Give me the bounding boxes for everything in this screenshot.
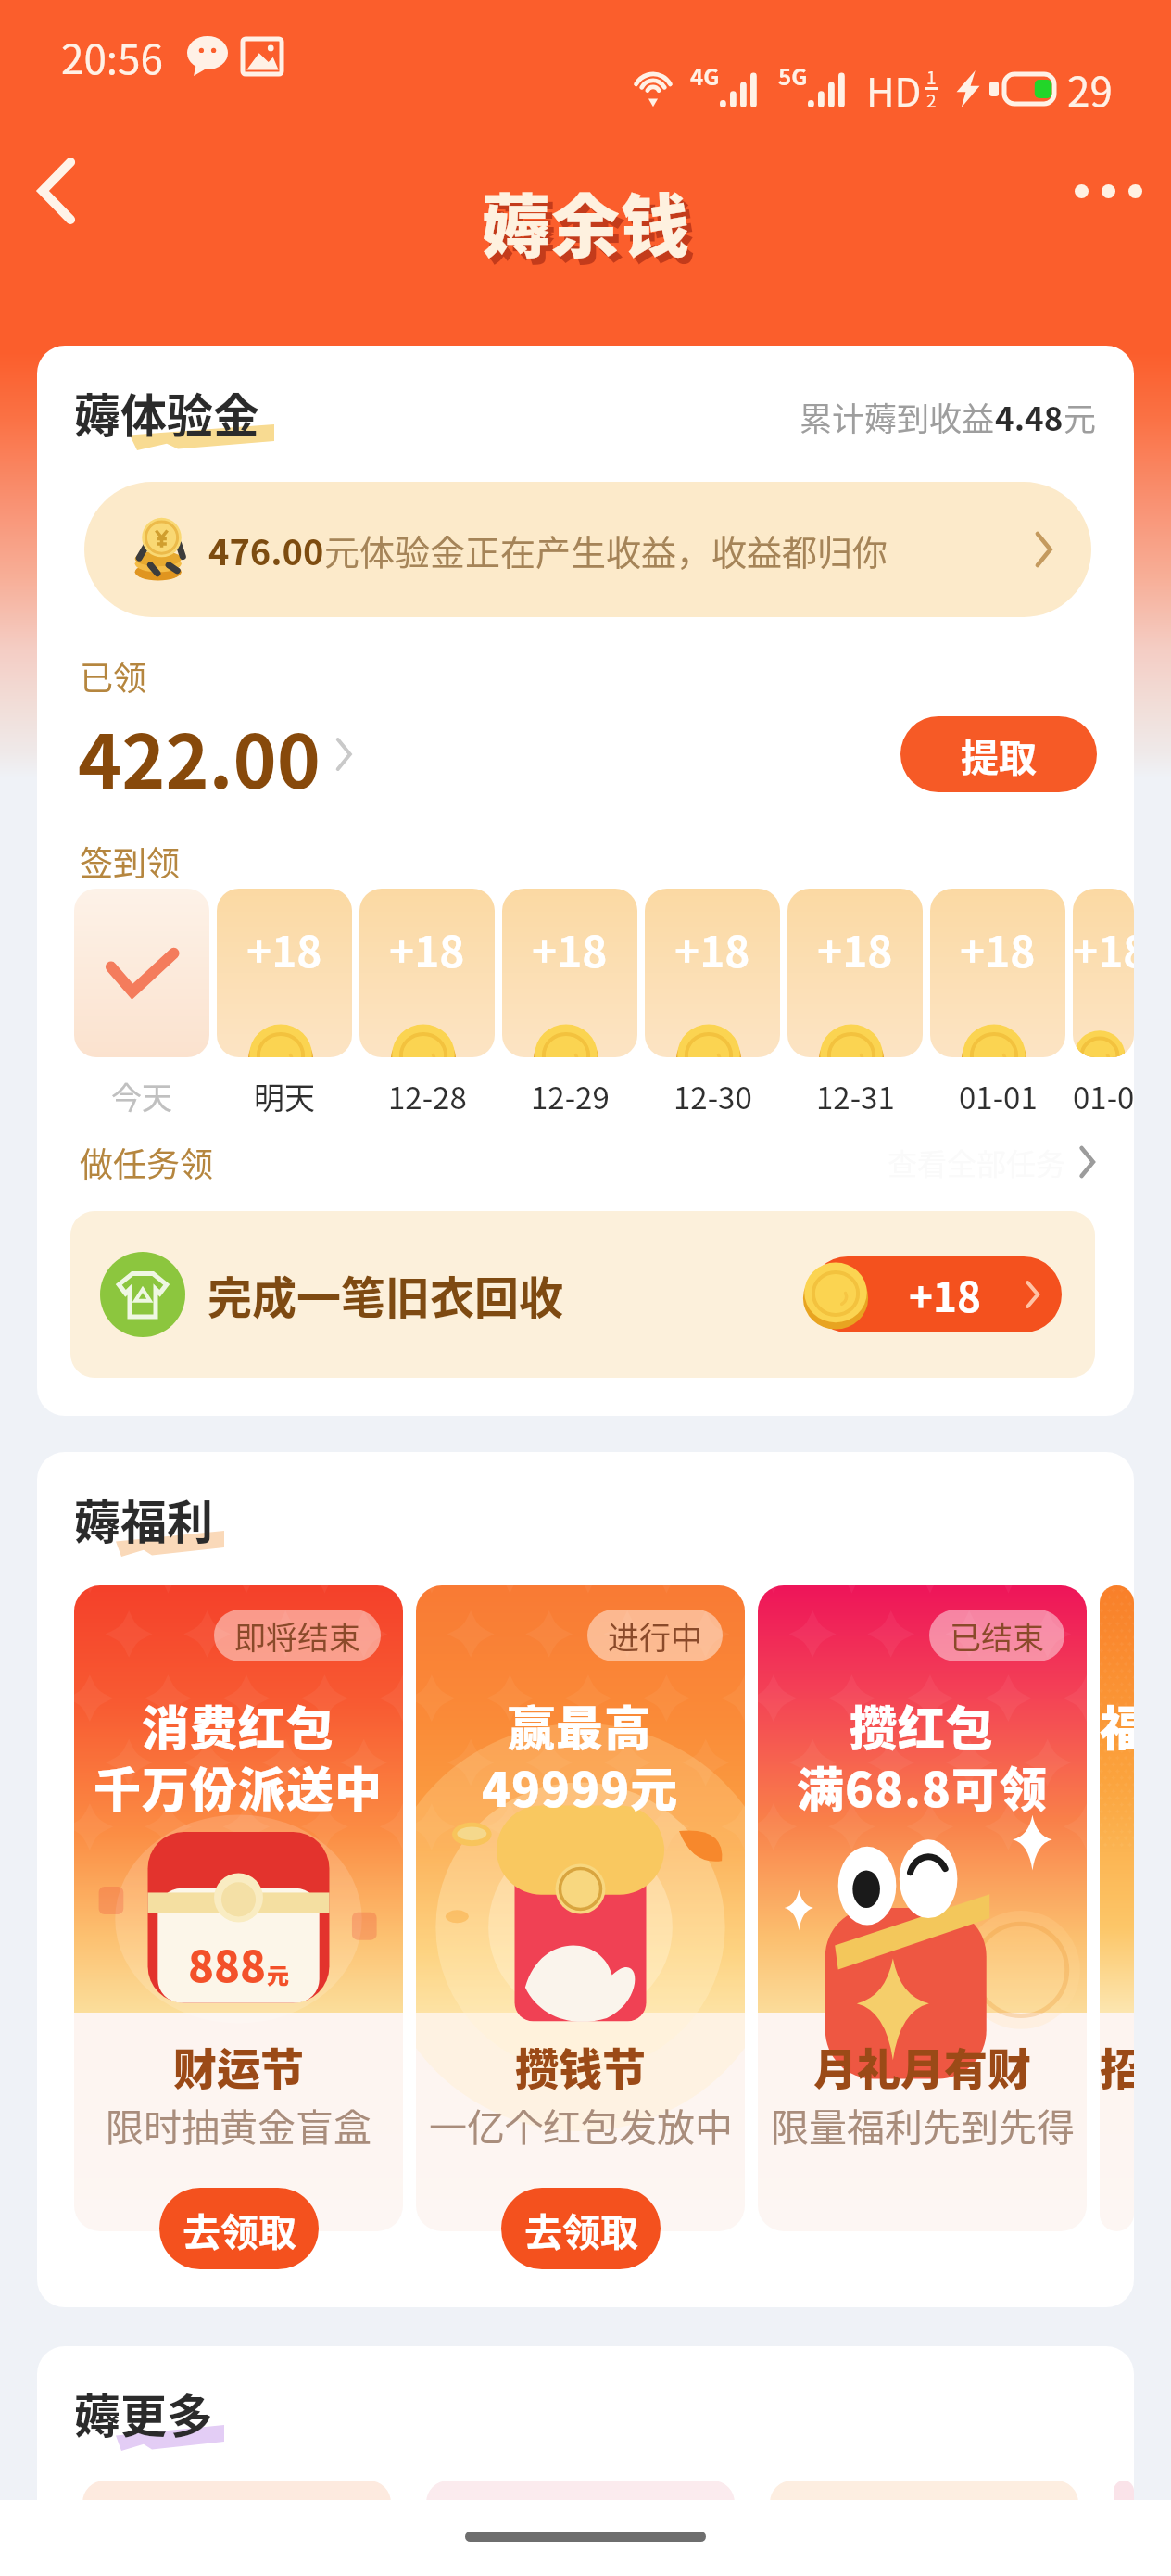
button[interactable]: 476.00 [84,482,1091,617]
staticText: 一亿个红包发放中 [429,2097,733,2152]
staticText: 限时抽黄金盲盒 [106,2097,371,2152]
staticText: 完成一笔旧衣回收 [208,1262,564,1327]
staticText: 01-01 [959,1074,1038,1118]
staticText: 薅体验金 [74,379,259,446]
staticText: 01-0 [1073,1074,1134,1118]
button[interactable]: +18 [1073,889,1134,1057]
button[interactable]: 422.00 [78,702,352,806]
staticText: +18 [1073,918,1134,980]
staticText: 12-31 [816,1074,895,1118]
staticText: 限量福利先到先得 [771,2097,1075,2152]
staticText: 薅余钱 [482,171,690,271]
staticText: 已领 [80,651,147,700]
staticText: 即将结束 [234,1613,360,1659]
button[interactable]: 福 [1100,1585,1134,2231]
staticText: 千万份派送中 [94,1752,384,1821]
staticText: 2 [926,87,937,113]
staticText: 422.00 [78,702,321,806]
button[interactable]: 完成一笔旧衣回收 [70,1211,1095,1378]
button[interactable]: More options [1062,157,1154,225]
staticText: 1 [926,64,937,90]
button[interactable]: +18 [645,889,780,1057]
button[interactable]: 888 [74,1585,403,2231]
button[interactable] [82,2481,391,2576]
staticText: 进行中 [608,1613,702,1659]
staticText: 签到领 [80,837,181,885]
staticText: 29 [1067,59,1113,119]
staticText: 已结束 [950,1613,1044,1659]
staticText: 消费红包 [142,1691,335,1760]
staticText: 888 [188,1933,267,1995]
staticText: 5G [778,59,808,92]
staticText: 12-29 [531,1074,610,1118]
button[interactable]: +18 [359,889,495,1057]
button[interactable]: +18 [787,889,923,1057]
staticText: 今天 [111,1074,172,1118]
button[interactable]: 去领取 [501,2188,661,2269]
button[interactable]: 已结束 [758,1585,1087,2231]
staticText: HD [866,61,922,118]
button[interactable]: 做任务领 [80,1138,1095,1186]
staticText: 4G [690,59,720,92]
staticText: 20:56 [61,27,163,86]
button[interactable]: +18 [502,889,637,1057]
staticText: 薅福利 [74,1485,213,1552]
staticText: 赢最高 [508,1691,653,1760]
staticText: 月礼月有财 [813,2034,1031,2097]
button[interactable]: +18 [217,889,352,1057]
button[interactable] [74,889,209,1057]
button[interactable]: Back [20,155,93,227]
staticText: 元体验金正在产生收益，收益都归你 [324,524,888,575]
staticText: 薅余钱 [487,178,696,277]
staticText: 去领取 [183,2202,296,2256]
staticText: 476.00 [208,524,324,575]
button[interactable]: 进行中 [416,1585,745,2231]
staticText: 财运节 [173,2034,304,2097]
button[interactable]: 去领取 [159,2188,319,2269]
staticText: 满68.8可领 [797,1752,1049,1821]
button[interactable]: +18 [930,889,1065,1057]
staticText: 福 [1100,1691,1134,1760]
staticText: 薅更多 [74,2380,213,2446]
staticText: 4.48 [995,393,1064,440]
staticText: 12-28 [388,1074,467,1118]
staticText: 12-30 [674,1074,752,1118]
staticText: +18 [389,918,465,980]
staticText: 明天 [254,1074,315,1118]
staticText: 做任务领 [80,1138,214,1186]
staticText: 攒红包 [850,1691,995,1760]
button[interactable] [1114,2481,1134,2576]
staticText: +18 [674,918,750,980]
staticText: 攒钱节 [515,2034,646,2097]
staticText: 累计薅到收益 [800,393,995,440]
button[interactable]: 提取 [900,716,1097,792]
staticText: 招 [1100,2034,1134,2097]
staticText: +18 [909,1265,981,1324]
button[interactable] [810,1256,1062,1332]
staticText: +18 [960,918,1036,980]
staticText: 元 [267,1958,289,1990]
staticText: +18 [817,918,893,980]
staticText: 去领取 [524,2202,638,2256]
staticText: +18 [246,918,322,980]
staticText: 提取 [961,727,1037,782]
staticText: +18 [532,918,608,980]
staticText: 49999元 [482,1752,679,1821]
button[interactable] [770,2481,1078,2576]
button[interactable] [426,2481,735,2576]
staticText: 元 [1064,393,1097,440]
